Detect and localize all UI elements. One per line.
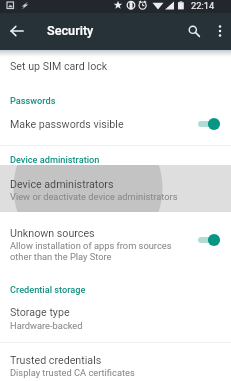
staticText: Security (47, 23, 94, 38)
staticText: other than the Play Store (10, 251, 112, 262)
staticText: Allow installation of apps from sources (10, 240, 172, 251)
staticText: Display trusted CA certificates (10, 367, 135, 378)
staticText: Storage type (10, 306, 70, 319)
staticText: Make passwords visible (10, 118, 124, 131)
staticText: Device administrators (10, 178, 114, 191)
button[interactable]: Search (180, 13, 208, 49)
button[interactable] (0, 110, 231, 140)
button[interactable] (198, 117, 222, 131)
staticText: Set up SIM card lock (10, 60, 108, 73)
button[interactable] (0, 300, 231, 340)
button[interactable]: Navigate up (0, 13, 34, 49)
staticText: Trusted credentials (10, 354, 102, 367)
staticText: Credential storage (10, 284, 86, 295)
staticText: Device administration (10, 154, 100, 165)
button[interactable]: More options (208, 13, 231, 49)
staticText: Hardware-backed (10, 320, 83, 331)
button[interactable] (198, 233, 222, 247)
staticText: 22:14 (191, 0, 215, 11)
staticText: View or deactivate device administrators (10, 191, 178, 202)
staticText: Passwords (10, 95, 56, 106)
button[interactable] (0, 343, 231, 381)
button[interactable] (0, 53, 231, 77)
staticText: Unknown sources (10, 227, 95, 240)
button[interactable] (0, 165, 231, 212)
button[interactable] (0, 218, 231, 266)
